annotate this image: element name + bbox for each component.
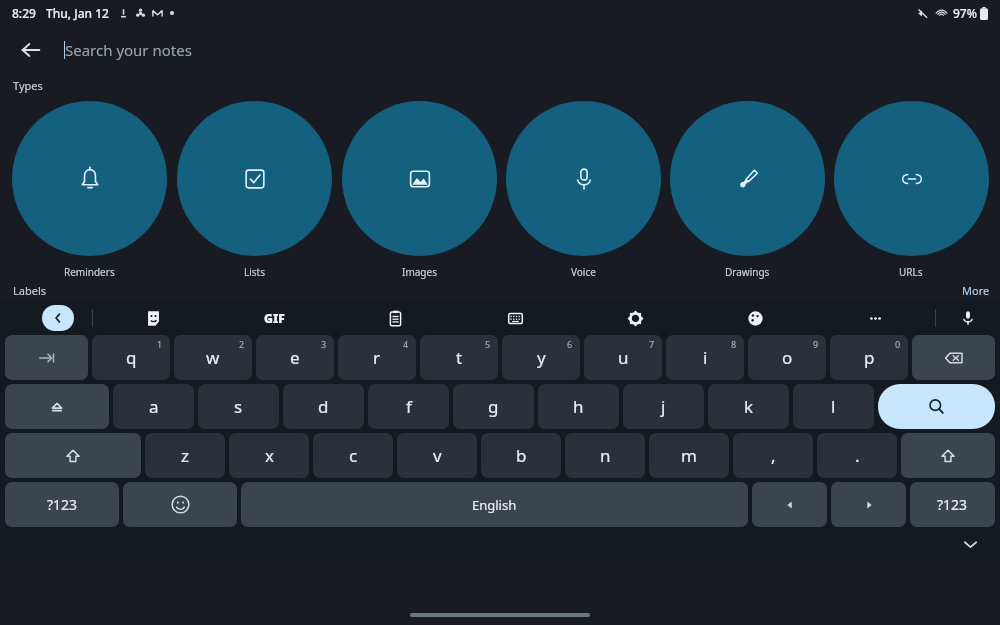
button[interactable]: Back bbox=[10, 29, 52, 71]
button[interactable]: u bbox=[584, 335, 662, 380]
button[interactable]: e bbox=[256, 335, 334, 380]
staticText: y bbox=[537, 346, 546, 369]
button[interactable]: v bbox=[397, 433, 477, 478]
staticText: , bbox=[771, 444, 776, 467]
staticText: ?123 bbox=[937, 495, 968, 514]
button[interactable]: Shift bbox=[901, 433, 995, 478]
button[interactable]: ?123 bbox=[5, 482, 119, 527]
staticText: l bbox=[831, 395, 836, 418]
button[interactable]: Move cursor left bbox=[752, 482, 827, 527]
button[interactable]: i bbox=[666, 335, 744, 380]
button[interactable]: Backspace bbox=[912, 335, 995, 380]
staticText: . bbox=[855, 444, 860, 467]
staticText: 1 bbox=[157, 338, 163, 350]
staticText: ?123 bbox=[47, 495, 78, 514]
staticText: 97% bbox=[953, 5, 977, 21]
button[interactable]: a bbox=[113, 384, 194, 429]
button[interactable]: ?123 bbox=[910, 482, 995, 527]
staticText: Voice bbox=[571, 265, 596, 279]
button[interactable]: More bbox=[962, 283, 990, 298]
button[interactable]: Lists bbox=[172, 101, 337, 279]
staticText: Reminders bbox=[64, 265, 115, 279]
button[interactable]: o bbox=[748, 335, 826, 380]
staticText: 6 bbox=[567, 338, 573, 350]
staticText: 9 bbox=[813, 338, 819, 350]
staticText: k bbox=[744, 395, 754, 418]
button[interactable]: Themes bbox=[695, 301, 815, 335]
staticText: Labels bbox=[13, 283, 47, 298]
button[interactable]: s bbox=[198, 384, 279, 429]
staticText: p bbox=[864, 346, 875, 369]
button[interactable]: Caps lock bbox=[5, 384, 109, 429]
staticText: 3 bbox=[321, 338, 327, 350]
button[interactable]: p bbox=[830, 335, 908, 380]
button[interactable]: URLs bbox=[829, 101, 993, 279]
staticText: a bbox=[149, 395, 159, 418]
button[interactable]: More options bbox=[815, 301, 935, 335]
button[interactable]: d bbox=[283, 384, 364, 429]
staticText: s bbox=[234, 395, 243, 418]
button[interactable]: Voice bbox=[501, 101, 665, 279]
button[interactable]: Images bbox=[337, 101, 501, 279]
button[interactable]: Move cursor right bbox=[831, 482, 906, 527]
button[interactable]: Search bbox=[878, 384, 995, 429]
button[interactable]: . bbox=[817, 433, 897, 478]
staticText: q bbox=[126, 346, 137, 369]
staticText: r bbox=[373, 346, 381, 369]
button[interactable]: m bbox=[649, 433, 729, 478]
button[interactable]: Settings bbox=[575, 301, 695, 335]
button[interactable]: Clipboard bbox=[335, 301, 455, 335]
button[interactable]: h bbox=[538, 384, 619, 429]
button[interactable]: , bbox=[733, 433, 813, 478]
staticText: d bbox=[318, 395, 329, 418]
staticText: w bbox=[206, 346, 220, 369]
button[interactable]: Keyboard modes bbox=[455, 301, 575, 335]
button[interactable]: Reminders bbox=[7, 101, 172, 279]
button[interactable]: Drawings bbox=[665, 101, 829, 279]
button[interactable]: Shift bbox=[5, 433, 141, 478]
staticText: Drawings bbox=[725, 265, 770, 279]
button[interactable]: r bbox=[338, 335, 416, 380]
button[interactable]: Emoji bbox=[123, 482, 237, 527]
button[interactable]: k bbox=[708, 384, 789, 429]
staticText: g bbox=[488, 395, 499, 418]
staticText: 4 bbox=[403, 338, 409, 350]
staticText: n bbox=[600, 444, 611, 467]
staticText: u bbox=[618, 346, 629, 369]
staticText: 5 bbox=[485, 338, 491, 350]
staticText: English bbox=[472, 496, 517, 514]
staticText: Search your notes bbox=[65, 40, 192, 60]
button[interactable]: Stickers bbox=[93, 301, 214, 335]
button[interactable]: Hide keyboard bbox=[956, 530, 984, 558]
button[interactable]: q bbox=[92, 335, 170, 380]
button[interactable]: g bbox=[453, 384, 534, 429]
staticText: 8 bbox=[731, 338, 737, 350]
staticText: b bbox=[516, 444, 527, 467]
button[interactable]: Tab bbox=[5, 335, 88, 380]
button[interactable]: x bbox=[229, 433, 309, 478]
staticText: Types bbox=[13, 78, 43, 93]
button[interactable]: English bbox=[241, 482, 748, 527]
staticText: o bbox=[782, 346, 793, 369]
staticText: c bbox=[349, 444, 358, 467]
button[interactable]: l bbox=[793, 384, 874, 429]
button[interactable]: f bbox=[368, 384, 449, 429]
staticText: 8:29 bbox=[12, 5, 36, 21]
button[interactable]: c bbox=[313, 433, 393, 478]
button[interactable]: w bbox=[174, 335, 252, 380]
button[interactable]: n bbox=[565, 433, 645, 478]
staticText: x bbox=[265, 444, 274, 467]
staticText: m bbox=[681, 444, 697, 467]
button[interactable]: t bbox=[420, 335, 498, 380]
staticText: 0 bbox=[895, 338, 901, 350]
button[interactable]: GIF bbox=[214, 301, 335, 335]
staticText: t bbox=[456, 346, 463, 369]
staticText: 2 bbox=[239, 338, 245, 350]
button[interactable]: b bbox=[481, 433, 561, 478]
button[interactable]: z bbox=[145, 433, 225, 478]
button[interactable]: Voice input bbox=[936, 301, 1000, 335]
button[interactable]: j bbox=[623, 384, 704, 429]
button[interactable]: y bbox=[502, 335, 580, 380]
button[interactable]: Expand bbox=[42, 305, 74, 331]
staticText: GIF bbox=[264, 310, 285, 326]
